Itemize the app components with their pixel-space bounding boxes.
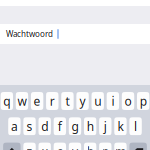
button[interactable]: q <box>1 92 13 110</box>
staticText: z <box>26 144 32 150</box>
staticText: x <box>42 144 48 150</box>
button[interactable]: e <box>31 92 43 110</box>
staticText: k <box>117 118 123 134</box>
button[interactable]: g <box>69 117 81 135</box>
button[interactable]: h <box>84 117 96 135</box>
staticText: r <box>50 93 55 109</box>
button[interactable]: s <box>23 117 36 135</box>
staticText: t <box>65 93 69 109</box>
button[interactable]: Shift <box>3 143 21 150</box>
button[interactable]: n <box>99 143 111 150</box>
button[interactable]: Wachtwoord <box>0 24 150 44</box>
button[interactable]: p <box>137 92 149 110</box>
staticText: i <box>111 93 114 109</box>
staticText: n <box>102 144 109 150</box>
staticText: p <box>140 93 147 109</box>
button[interactable]: j <box>99 117 111 135</box>
staticText: f <box>58 118 62 134</box>
staticText: w <box>17 93 26 109</box>
staticText: u <box>94 93 101 109</box>
staticText: m <box>115 144 126 150</box>
staticText: e <box>34 93 41 109</box>
button[interactable]: f <box>54 117 66 135</box>
button[interactable]: t <box>61 92 74 110</box>
staticText: v <box>72 144 78 150</box>
button[interactable]: m <box>114 143 127 150</box>
button[interactable]: c <box>54 143 66 150</box>
button[interactable]: r <box>46 92 58 110</box>
button[interactable]: u <box>91 92 104 110</box>
staticText: b <box>87 144 94 150</box>
staticText: s <box>26 118 32 134</box>
staticText: h <box>87 118 94 134</box>
button[interactable]: i <box>107 92 119 110</box>
staticText: j <box>104 118 107 134</box>
button[interactable]: a <box>8 117 21 135</box>
staticText: d <box>41 118 48 134</box>
staticText: q <box>3 93 10 109</box>
button[interactable]: k <box>114 117 127 135</box>
staticText: c <box>57 144 63 150</box>
button[interactable]: v <box>69 143 81 150</box>
button[interactable]: z <box>23 143 36 150</box>
button[interactable]: b <box>84 143 96 150</box>
staticText: a <box>11 118 18 134</box>
staticText: o <box>124 93 131 109</box>
button[interactable]: o <box>122 92 134 110</box>
button[interactable]: Delete <box>129 143 147 150</box>
button[interactable]: l <box>129 117 142 135</box>
button[interactable]: d <box>38 117 51 135</box>
staticText: Wachtwoord <box>6 29 53 39</box>
button[interactable]: x <box>38 143 51 150</box>
button[interactable]: w <box>16 92 28 110</box>
button[interactable]: y <box>76 92 89 110</box>
staticText: g <box>71 118 78 134</box>
staticText: y <box>80 93 86 109</box>
staticText: l <box>134 118 137 134</box>
